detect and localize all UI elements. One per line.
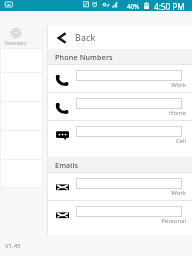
staticText: Home: [168, 109, 186, 117]
staticText: 4:50 PM: [154, 1, 185, 12]
button[interactable]: Back: [48, 26, 192, 49]
staticText: Phone Numbers: [55, 52, 113, 62]
staticText: Work: [171, 189, 186, 197]
button[interactable]: Cell: [48, 120, 192, 148]
button[interactable]: Home: [48, 92, 192, 120]
staticText: Back: [75, 32, 96, 44]
button[interactable]: [0, 131, 43, 159]
button[interactable]: Inventory: [0, 28, 32, 47]
button[interactable]: Personal: [48, 200, 192, 228]
staticText: 40%: [127, 2, 140, 10]
staticText: V1.45: [5, 242, 21, 250]
staticText: Cell: [175, 137, 186, 145]
button[interactable]: Work: [48, 64, 192, 92]
button[interactable]: [0, 48, 43, 72]
other: Back: [58, 33, 66, 43]
button[interactable]: [0, 102, 43, 130]
other: Inventory: [11, 28, 21, 38]
staticText: Inventory: [5, 40, 27, 47]
button[interactable]: [0, 160, 43, 188]
staticText: Personal: [161, 217, 186, 225]
button[interactable]: [0, 73, 43, 101]
button[interactable]: Work: [48, 172, 192, 200]
staticText: Work: [171, 81, 186, 89]
staticText: Emails: [55, 160, 79, 170]
